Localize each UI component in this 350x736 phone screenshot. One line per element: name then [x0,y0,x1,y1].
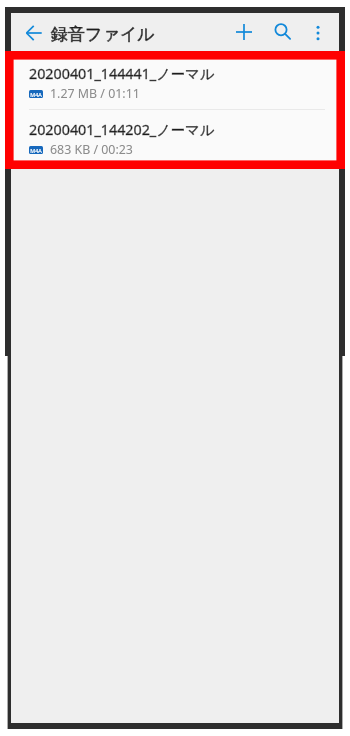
staticText: 683 KB / 00:23 [50,141,133,158]
button[interactable]: More options [298,13,338,53]
staticText: 20200401_144441_ノーマル [29,64,215,84]
button[interactable]: Add [224,12,264,52]
button[interactable]: 20200401_144202_ノーマル [11,110,339,166]
staticText: 録音ファイル [51,24,155,45]
button[interactable]: Search [263,12,303,52]
staticText: 20200401_144202_ノーマル [29,120,215,140]
staticText: 録音ファイル [51,24,155,45]
staticText: M4A [30,91,42,98]
staticText: 1.27 MB / 01:11 [50,85,140,102]
staticText: 20200401_144202_ノーマル [29,120,215,140]
button[interactable]: 20200401_144441_ノーマル [11,54,339,110]
staticText: M4A [30,147,42,154]
button[interactable]: Back [14,13,54,53]
staticText: 20200401_144441_ノーマル [29,64,215,84]
